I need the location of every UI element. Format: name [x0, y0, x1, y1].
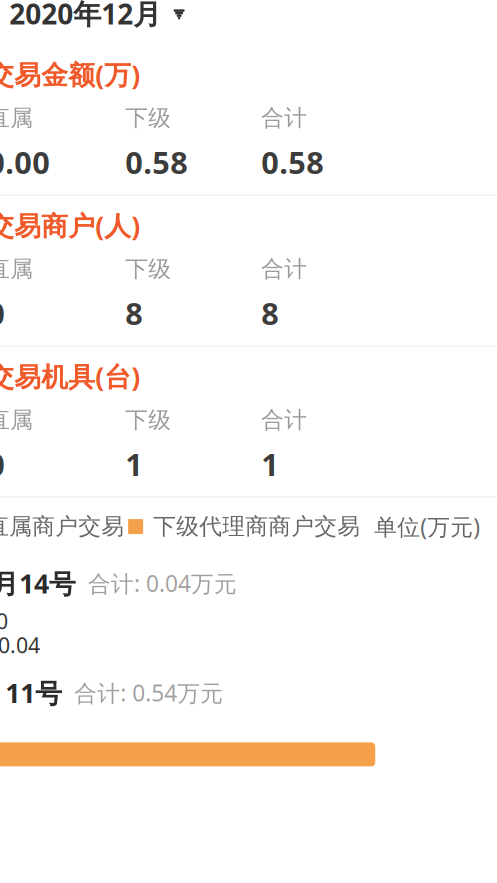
staticText: 直属	[0, 104, 33, 132]
staticText: 2020年12月	[9, 0, 161, 32]
staticText: 合计	[261, 406, 307, 434]
staticText: 0.04	[0, 631, 40, 659]
staticText: 0.58	[261, 142, 324, 183]
staticText: 0.58	[125, 142, 188, 183]
staticText: 8	[261, 293, 279, 333]
staticText: 8	[125, 293, 143, 333]
staticText: 直属商户交易	[0, 513, 124, 540]
staticText: 交易金额(万)	[0, 57, 140, 92]
staticText: 0.00	[0, 142, 50, 183]
staticText: 下级	[125, 255, 171, 283]
staticText: 0	[0, 444, 5, 484]
staticText: 合计: 0.04万元	[88, 568, 237, 598]
staticText: 下级代理商商户交易	[153, 513, 360, 540]
staticText: 下级	[125, 406, 171, 434]
staticText: 合计	[261, 255, 307, 283]
staticText: 直属	[0, 406, 33, 434]
staticText: 12月11号	[0, 675, 62, 710]
staticText: 单位(万元)	[374, 511, 480, 542]
button[interactable]: 2020年12月	[0, 0, 497, 43]
staticText: 交易机具(台)	[0, 359, 140, 394]
staticText: 12月14号	[0, 565, 76, 601]
staticText: 交易商户(人)	[0, 208, 140, 243]
staticText: 0	[0, 293, 5, 333]
staticText: 合计	[261, 104, 307, 132]
staticText: 下级	[125, 104, 171, 132]
staticText: 1	[125, 444, 143, 484]
staticText: 直属	[0, 255, 33, 283]
staticText: 0.00	[0, 607, 8, 635]
staticText: 合计: 0.54万元	[74, 678, 223, 708]
staticText: 1	[261, 444, 279, 484]
